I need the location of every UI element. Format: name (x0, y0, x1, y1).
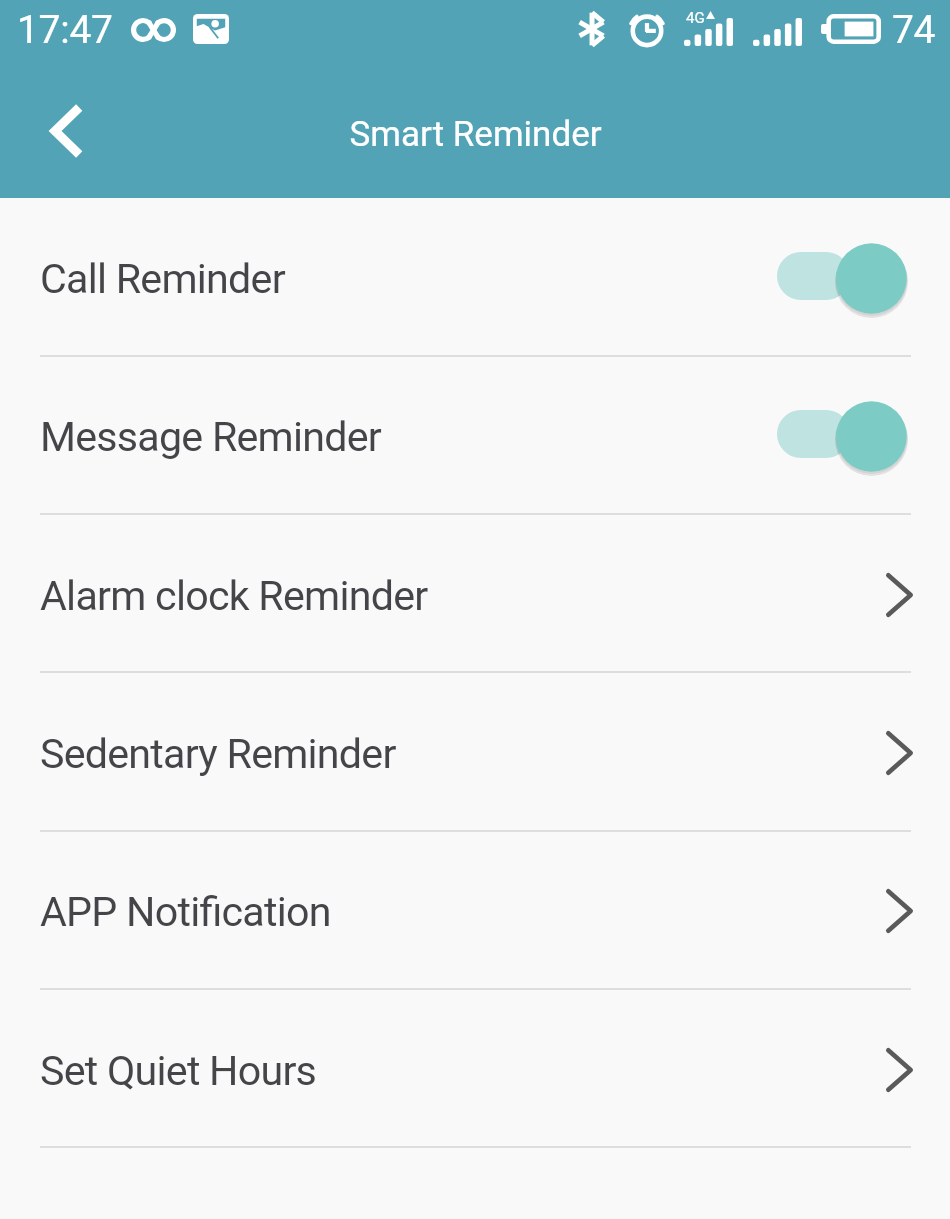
staticText: 17:47 (17, 7, 113, 53)
button[interactable]: Call Reminder toggle, on (777, 241, 908, 315)
button[interactable]: Alarm clock Reminder (0, 516, 950, 674)
button[interactable]: Call Reminder (0, 199, 950, 357)
button[interactable]: Message Reminder (0, 357, 950, 515)
staticText: Message Reminder (40, 413, 777, 461)
button[interactable]: Set Quiet Hours (0, 991, 950, 1149)
staticText: APP Notification (40, 888, 886, 936)
button[interactable]: APP Notification (0, 832, 950, 990)
staticText: 4G (686, 9, 705, 27)
staticText: Smart Reminder (349, 114, 602, 155)
button[interactable]: Message Reminder toggle, on (777, 399, 908, 473)
staticText: Call Reminder (40, 255, 777, 303)
staticText: Alarm clock Reminder (40, 572, 886, 620)
button[interactable]: Back (0, 58, 128, 198)
staticText: Sedentary Reminder (40, 730, 886, 778)
button[interactable]: Sedentary Reminder (0, 674, 950, 832)
staticText: 74 (892, 7, 936, 53)
staticText: Set Quiet Hours (40, 1047, 886, 1095)
